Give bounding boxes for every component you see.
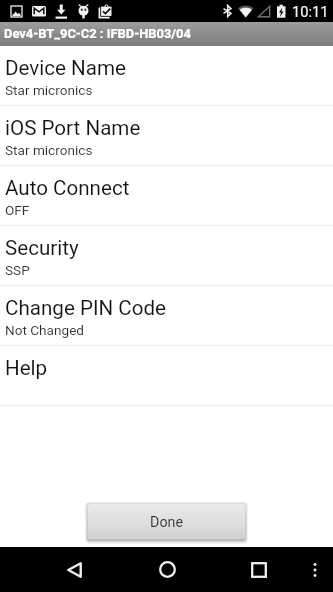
button[interactable]: Device Name [0,46,333,105]
button[interactable]: Home [145,551,189,588]
button[interactable]: Recent apps [237,551,281,588]
staticText: Auto Connect [5,176,130,200]
staticText: Device Name [5,56,126,80]
staticText: Change PIN Code [5,296,166,320]
staticText: Help [5,356,48,380]
staticText: iOS Port Name [5,116,141,140]
staticText: SSP [5,262,30,278]
staticText: Dev4-BT_9C-C2 : IFBD-HB03/04 [4,26,191,41]
button[interactable]: Back [52,551,96,588]
staticText: Star micronics [5,82,93,98]
button[interactable]: Change PIN Code [0,286,333,345]
staticText: Done [150,514,184,531]
button[interactable]: More options [300,551,329,588]
staticText: Star micronics [5,142,93,158]
staticText: Not Changed [5,322,85,338]
button[interactable]: Done [87,503,246,541]
button[interactable]: Help [0,346,333,405]
button[interactable]: iOS Port Name [0,106,333,165]
staticText: Security [5,236,79,260]
staticText: 10:11 [292,3,329,20]
staticText: OFF [5,202,30,218]
button[interactable]: Security [0,226,333,285]
button[interactable]: Auto Connect [0,166,333,225]
